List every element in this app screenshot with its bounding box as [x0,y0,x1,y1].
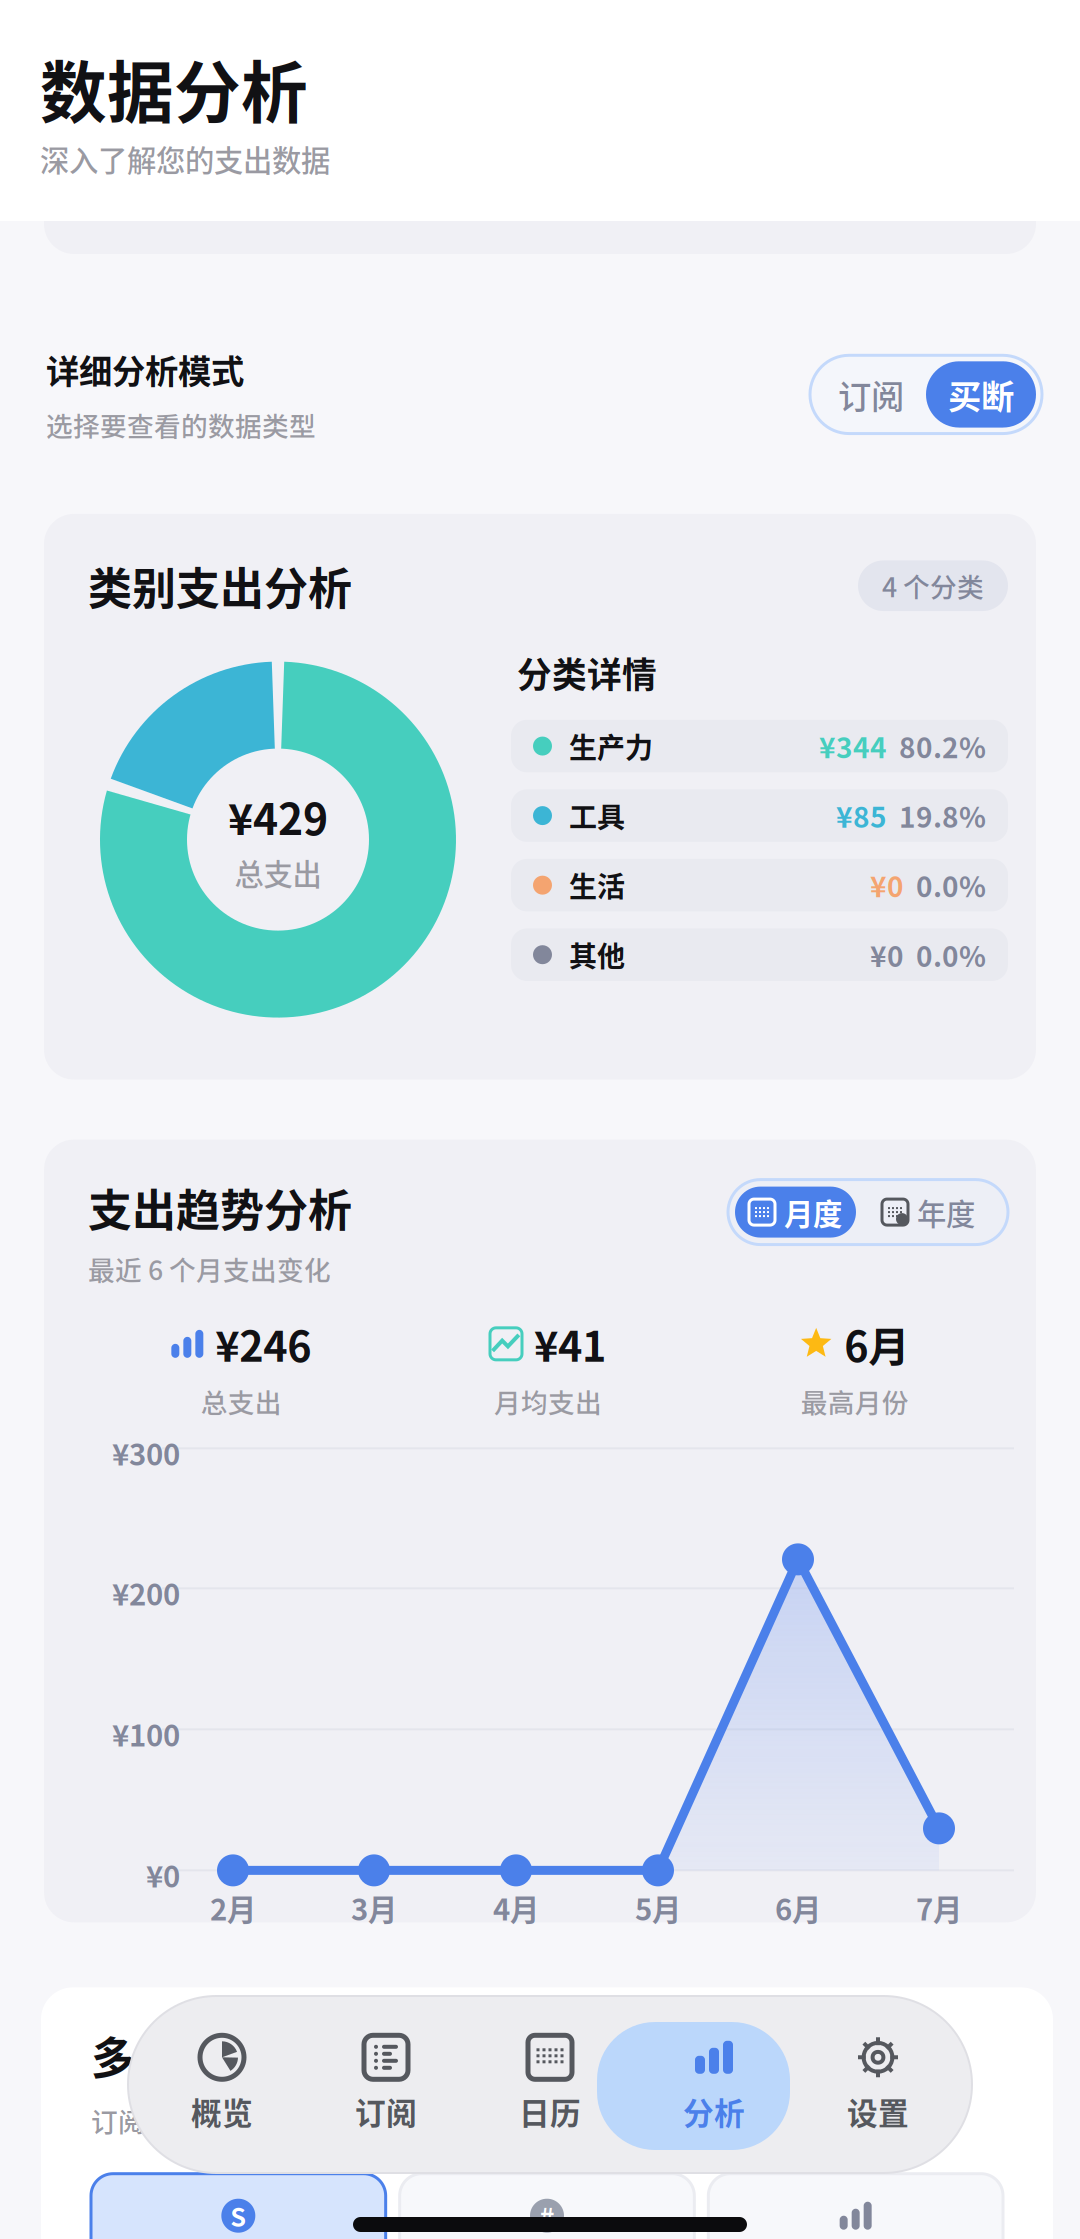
staticText: 其他 [569,934,625,975]
staticText: 19.8% [899,795,986,836]
staticText: 总支出 [234,851,321,894]
staticText: ¥300 [112,1431,180,1474]
staticText: 类别支出分析 [88,554,352,618]
button[interactable]: 平均 [708,2174,1003,2239]
button[interactable]: S [91,2174,386,2239]
staticText: 最近 6 个月支出变化 [88,1249,331,1288]
button[interactable]: 年度 [856,1187,1001,1238]
staticText: ¥0 [870,865,904,905]
staticText: ¥429 [228,785,328,847]
staticText: 5月 [635,1886,681,1929]
staticText: 日历 [519,2089,581,2134]
staticText: # [539,2197,554,2234]
button[interactable]: 日历 [468,2020,632,2148]
staticText: ¥0 [146,1853,180,1896]
staticText: 0.0% [916,865,986,905]
staticText: 生活 [569,865,625,905]
button[interactable]: 买断 [926,361,1036,428]
button[interactable]: 概览 [140,2020,304,2148]
staticText: 月度 [784,1191,842,1233]
staticText: 订阅消费的多角度分析 [91,2101,361,2140]
staticText: 多维度对比 [91,2023,311,2087]
staticText: 3月 [351,1886,397,1929]
button[interactable]: 分析 [632,2020,796,2148]
staticText: ¥41 [534,1314,606,1374]
staticText: 生产力 [569,726,653,766]
staticText: 2月 [210,1886,256,1929]
staticText: ¥200 [112,1571,180,1614]
button[interactable]: # [400,2174,694,2239]
staticText: 0.0% [916,934,986,975]
staticText: 80.2% [899,726,986,766]
staticText: 订阅 [838,370,904,419]
staticText: 最高月份 [801,1382,909,1420]
staticText: 深入了解您的支出数据 [40,137,330,180]
staticText: ¥344 [819,726,887,766]
button[interactable]: 订阅 [304,2020,468,2148]
button[interactable]: 订阅 [816,361,926,428]
staticText: 选择要查看的数据类型 [46,405,316,444]
staticText: 支出趋势分析 [88,1176,352,1239]
staticText: 详细分析模式 [46,345,244,393]
staticText: ¥100 [112,1712,180,1755]
staticText: 总支出 [201,1382,282,1420]
staticText: 工具 [569,795,625,836]
staticText: 6月 [775,1886,821,1929]
staticText: 月均支出 [494,1382,602,1420]
button[interactable]: 月度 [735,1187,856,1238]
staticText: 7月 [916,1886,962,1929]
staticText: ¥246 [215,1314,311,1374]
staticText: 6月 [844,1314,909,1374]
button[interactable]: 设置 [796,2020,960,2148]
staticText: 分析 [683,2089,745,2134]
staticText: S [230,2197,246,2234]
staticText: 年度 [917,1191,975,1233]
staticText: ¥0 [870,934,904,975]
staticText: 4 个分类 [882,566,984,605]
staticText: 4月 [493,1886,539,1929]
staticText: 设置 [847,2089,909,2134]
staticText: 概览 [191,2089,253,2134]
staticText: 分类详情 [517,648,657,698]
staticText: ¥85 [836,795,887,836]
staticText: 数据分析 [40,40,308,136]
staticText: 买断 [948,370,1014,419]
staticText: 订阅 [355,2089,417,2134]
